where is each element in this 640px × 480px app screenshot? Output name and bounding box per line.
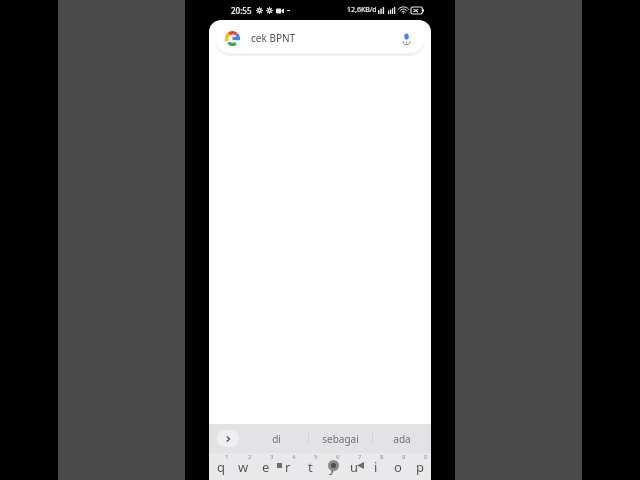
button[interactable]: y <box>321 453 343 480</box>
staticText: e <box>262 458 270 476</box>
button[interactable]: More suggestions <box>217 430 239 447</box>
staticText: 9 <box>402 453 406 461</box>
button[interactable]: e <box>255 453 277 480</box>
staticText: 8 <box>380 453 384 461</box>
staticText: 2 <box>248 453 252 461</box>
staticText: 0 <box>424 453 428 461</box>
staticText: t <box>308 458 313 476</box>
staticText: cek BPNT <box>251 31 296 45</box>
button[interactable]: ada <box>373 424 431 453</box>
button[interactable]: cek BPNT <box>215 23 425 53</box>
staticText: ada <box>393 432 411 446</box>
staticText: 6 <box>336 453 340 461</box>
button[interactable]: o <box>387 453 409 480</box>
button[interactable]: q <box>209 453 232 480</box>
staticText: 12,6KB/d <box>347 5 377 15</box>
staticText: 3 <box>270 453 274 461</box>
staticText: w <box>238 458 249 476</box>
button[interactable]: u <box>343 453 365 480</box>
staticText: 4 <box>292 453 296 461</box>
button[interactable]: Voice search <box>397 29 415 47</box>
staticText: r <box>285 458 291 476</box>
staticText: u <box>350 458 359 476</box>
staticText: di <box>272 432 281 446</box>
staticText: i <box>374 458 378 476</box>
button[interactable]: r <box>277 453 299 480</box>
staticText: y <box>329 458 336 476</box>
button[interactable]: di <box>245 424 308 453</box>
staticText: 20:55 <box>231 5 252 16</box>
staticText: 5 <box>314 453 318 461</box>
staticText: p <box>416 458 424 476</box>
staticText: q <box>217 458 225 476</box>
button[interactable]: t <box>299 453 321 480</box>
staticText: o <box>394 458 402 476</box>
button[interactable]: i <box>365 453 387 480</box>
button[interactable]: p <box>409 453 431 480</box>
staticText: 7 <box>358 453 362 461</box>
staticText: sebagai <box>322 432 359 446</box>
staticText: 1 <box>225 453 229 461</box>
button[interactable]: sebagai <box>309 424 372 453</box>
button[interactable]: w <box>232 453 255 480</box>
